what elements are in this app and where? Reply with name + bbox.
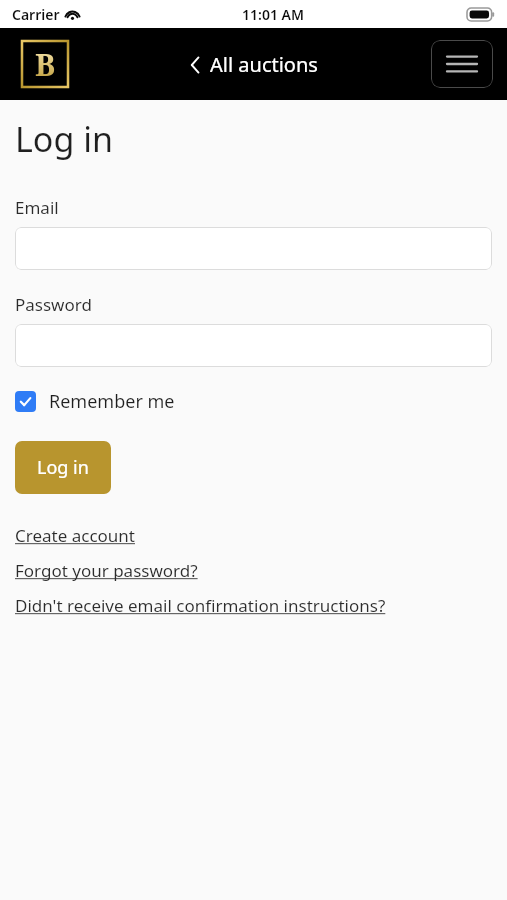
button[interactable]: Forgot your password?: [15, 559, 198, 582]
staticText: Password: [15, 293, 92, 316]
staticText: Carrier: [12, 5, 60, 24]
staticText: 11:01 AM: [242, 5, 304, 24]
staticText: B: [35, 44, 56, 85]
button[interactable]: Create account: [15, 524, 135, 547]
button[interactable]: Home: [22, 41, 68, 87]
button[interactable]: Menu: [431, 40, 493, 88]
button[interactable]: Didn't receive email confirmation instru…: [15, 594, 386, 617]
staticText: Forgot your password?: [15, 559, 198, 582]
button[interactable]: [15, 227, 492, 270]
staticText: Remember me: [49, 389, 175, 414]
button[interactable]: Log in: [15, 441, 111, 494]
staticText: Log in: [15, 116, 113, 162]
button[interactable]: [15, 324, 492, 367]
staticText: All auctions: [210, 51, 318, 78]
button[interactable]: All auctions: [190, 51, 318, 78]
staticText: Create account: [15, 524, 135, 547]
staticText: Log in: [37, 455, 89, 480]
staticText: Email: [15, 196, 59, 219]
button[interactable]: Remember me: [15, 389, 175, 414]
staticText: Didn't receive email confirmation instru…: [15, 594, 386, 617]
